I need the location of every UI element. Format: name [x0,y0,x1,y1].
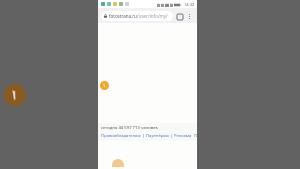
button[interactable]: Compose [100,81,109,90]
button[interactable]: fotostrana.ru [101,11,173,21]
staticText: Партнёрам [146,133,169,139]
button[interactable]: Правообладателям [101,133,141,139]
staticText: Реклама [174,133,192,139]
staticText: fotostrana.ru [109,13,137,19]
staticText: 14:32 [184,2,195,7]
button[interactable]: Tabs [175,12,184,21]
button[interactable]: Edit [4,84,26,106]
staticText: /user/info/my/id/ [137,13,170,19]
staticText: Правообладателям [101,133,141,139]
staticText: сегодня 44 597 713 человек [101,125,158,131]
button[interactable]: Партнёрам [146,133,169,139]
button[interactable]: More options [185,12,194,21]
button[interactable]: Реклама [174,133,192,139]
button[interactable] [112,159,124,167]
